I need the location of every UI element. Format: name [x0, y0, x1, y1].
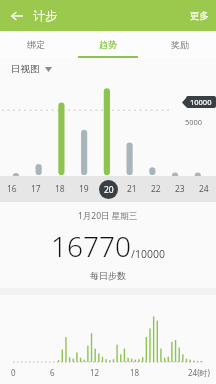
- button[interactable]: 22: [144, 176, 168, 202]
- button[interactable]: 24: [192, 176, 216, 202]
- staticText: 24(时): [188, 367, 210, 378]
- staticText: 1月20日 星期三: [78, 210, 138, 222]
- button[interactable]: 趋势: [72, 31, 144, 58]
- staticText: 计步: [33, 8, 57, 23]
- button[interactable]: 21: [120, 176, 144, 202]
- staticText: 6: [50, 367, 55, 378]
- button[interactable]: 18: [48, 176, 72, 202]
- button[interactable]: 17: [24, 176, 48, 202]
- staticText: 16770: [51, 227, 131, 265]
- staticText: 18: [130, 367, 140, 378]
- staticText: 日视图: [11, 63, 40, 75]
- staticText: 18: [55, 183, 65, 195]
- staticText: 绑定: [27, 39, 45, 50]
- button[interactable]: 绑定: [0, 31, 72, 58]
- staticText: 10000: [190, 97, 212, 107]
- staticText: 奖励: [171, 39, 189, 50]
- button[interactable]: 20: [96, 176, 120, 202]
- button[interactable]: 日视图: [11, 63, 52, 75]
- button[interactable]: 23: [168, 176, 192, 202]
- staticText: 16: [7, 183, 17, 195]
- staticText: /10000: [131, 247, 165, 261]
- staticText: 5000: [185, 117, 203, 127]
- staticText: 19: [79, 183, 89, 195]
- staticText: 12: [90, 367, 100, 378]
- button[interactable]: 更多: [183, 4, 216, 28]
- button[interactable]: 19: [72, 176, 96, 202]
- staticText: 20: [104, 184, 114, 196]
- button[interactable]: 奖励: [144, 31, 216, 58]
- staticText: 每日步数: [90, 270, 126, 281]
- button[interactable]: Back: [6, 5, 28, 27]
- staticText: 更多: [190, 10, 209, 22]
- staticText: 23: [175, 183, 185, 195]
- staticText: 22: [151, 183, 161, 195]
- staticText: 17: [31, 183, 41, 195]
- button[interactable]: 16: [0, 176, 24, 202]
- staticText: 21: [127, 183, 137, 195]
- staticText: 趋势: [99, 39, 117, 50]
- staticText: 0: [11, 367, 16, 378]
- staticText: 24: [199, 183, 209, 195]
